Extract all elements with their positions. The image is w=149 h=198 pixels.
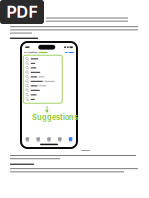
staticText: PDF: [6, 2, 37, 22]
button[interactable]: PDF: [0, 0, 44, 24]
staticText: Suggestions: [32, 113, 78, 122]
